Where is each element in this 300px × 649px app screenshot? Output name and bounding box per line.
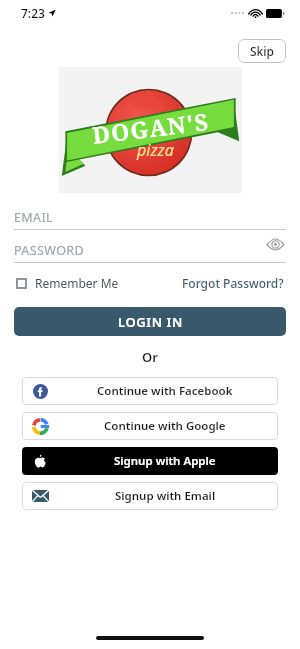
button[interactable]: Continue with Google <box>22 412 278 440</box>
staticText: Or <box>0 348 300 366</box>
button[interactable]: Remember Me <box>16 275 119 291</box>
staticText: EMAIL <box>14 209 54 226</box>
staticText: PASSWORD <box>14 242 85 259</box>
button[interactable]: Show password <box>264 234 286 254</box>
staticText: Skip <box>250 43 274 59</box>
staticText: Signup with Apple <box>114 453 216 469</box>
staticText: 7:23 <box>21 5 45 21</box>
button[interactable]: PASSWORD <box>14 240 286 260</box>
staticText: Continue with Google <box>104 418 226 434</box>
button[interactable]: Skip <box>238 39 286 63</box>
staticText: Signup with Email <box>115 488 216 504</box>
staticText: Remember Me <box>35 275 119 291</box>
button[interactable]: Signup with Email <box>22 482 278 510</box>
staticText: LOGIN IN <box>118 313 183 331</box>
button[interactable]: Forgot Password? <box>182 275 284 291</box>
button[interactable]: LOGIN IN <box>14 307 286 336</box>
button[interactable]: Signup with Apple <box>22 447 278 475</box>
button[interactable]: EMAIL <box>14 207 286 227</box>
staticText: Continue with Facebook <box>97 383 233 399</box>
staticText: DOGAN'S <box>91 105 211 150</box>
staticText: Forgot Password? <box>182 275 284 291</box>
staticText: pizza <box>137 139 174 161</box>
button[interactable]: Continue with Facebook <box>22 377 278 405</box>
